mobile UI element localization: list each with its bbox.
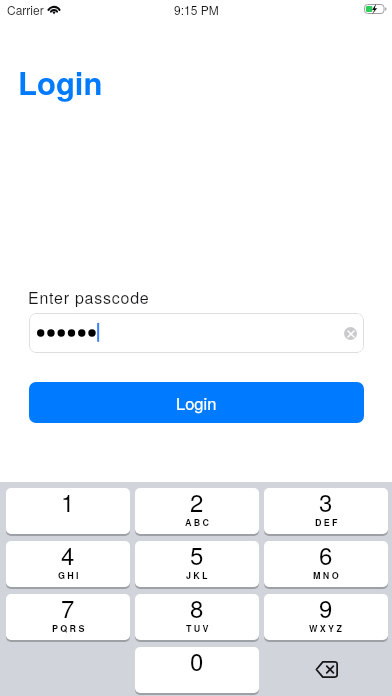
button[interactable]: Clear text [29,313,364,353]
button[interactable]: 4 [6,541,130,587]
button[interactable]: 1 [6,488,130,534]
staticText: JKL [186,569,210,582]
button[interactable]: 7 [6,594,130,640]
staticText: WXYZ [309,622,345,635]
button[interactable]: Backspace [264,647,388,693]
staticText: PQRS [52,622,87,635]
button[interactable]: 6 [264,541,388,587]
staticText: Enter passcode [28,286,150,309]
button[interactable]: 9 [264,594,388,640]
staticText: 7 [61,594,75,624]
staticText: Carrier [7,1,44,18]
staticText: 8 [190,594,204,624]
button[interactable]: 3 [264,488,388,534]
staticText: DEF [315,516,340,529]
staticText: ABC [185,516,212,529]
staticText: 9 [319,594,333,624]
staticText: 6 [319,541,333,571]
staticText: 1 [61,488,75,518]
button[interactable]: 0 [135,647,259,693]
staticText: TUV [186,622,211,635]
staticText: MNO [313,569,341,582]
button[interactable]: 8 [135,594,259,640]
button[interactable]: Login [29,382,364,423]
staticText: 4 [61,541,75,571]
staticText: 3 [319,488,333,518]
staticText: 2 [190,488,204,518]
button[interactable]: Clear text [344,327,357,340]
button[interactable]: 5 [135,541,259,587]
staticText: 0 [190,647,204,677]
staticText: GHI [58,569,81,582]
staticText: 9:15 PM [174,1,219,18]
button[interactable]: 2 [135,488,259,534]
staticText: 5 [190,541,204,571]
staticText: Login [18,60,103,104]
staticText: Login [176,391,217,415]
